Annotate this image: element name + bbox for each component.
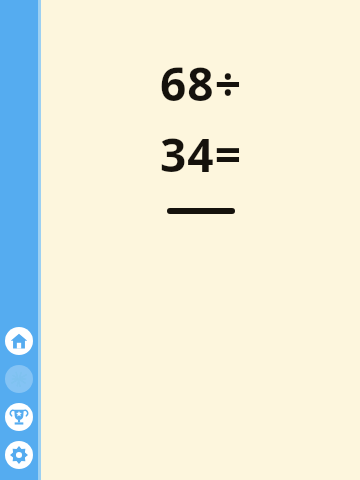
staticText: 68÷ — [160, 52, 242, 115]
button[interactable]: Settings — [5, 441, 33, 469]
button[interactable]: Practice — [5, 365, 33, 393]
staticText: 34= — [160, 123, 242, 186]
button[interactable]: Achievements — [5, 403, 33, 431]
button[interactable]: Home — [5, 327, 33, 355]
